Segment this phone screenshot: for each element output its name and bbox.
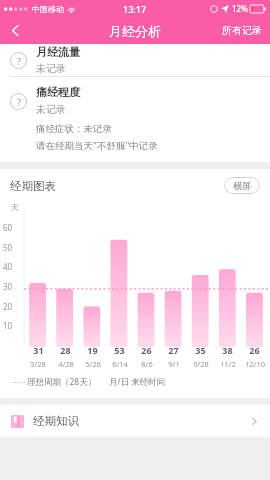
staticText: 所有记录 xyxy=(222,24,262,37)
staticText: 27 xyxy=(168,344,179,356)
staticText: 4/28 xyxy=(58,359,74,369)
staticText: 12/10 xyxy=(245,359,265,369)
staticText: 未记录 xyxy=(36,103,66,116)
staticText: 38 xyxy=(222,344,233,356)
staticText: 5/26 xyxy=(85,359,101,369)
staticText: 26 xyxy=(141,344,152,356)
staticText: 月经分析 xyxy=(109,23,161,39)
button[interactable]: ? xyxy=(0,44,270,76)
staticText: 19 xyxy=(87,344,98,356)
staticText: 30 xyxy=(3,281,13,292)
staticText: 50 xyxy=(3,242,13,253)
staticText: 60 xyxy=(3,222,13,233)
staticText: 40 xyxy=(3,261,13,272)
staticText: 横屏 xyxy=(233,180,251,191)
staticText: 痛经程度 xyxy=(36,85,80,99)
staticText: 28 xyxy=(60,344,71,356)
staticText: 经期图表 xyxy=(10,179,56,193)
staticText: 26 xyxy=(249,344,260,356)
staticText: 8/6 xyxy=(141,359,153,369)
staticText: 未记录 xyxy=(36,62,66,75)
staticText: 经期知识 xyxy=(33,414,79,428)
staticText: 53 xyxy=(114,344,125,356)
staticText: 20 xyxy=(3,301,13,312)
staticText: 35 xyxy=(195,344,206,356)
staticText: 31 xyxy=(33,344,44,356)
staticText: 11/2 xyxy=(220,359,236,369)
staticText: 13:17 xyxy=(123,3,147,15)
staticText: 9/1 xyxy=(168,359,180,369)
staticText: 天 xyxy=(11,202,19,212)
staticText: 10 xyxy=(3,320,13,331)
button[interactable]: Back xyxy=(0,17,30,44)
staticText: ? xyxy=(17,55,21,67)
staticText: 请在经期当天"不舒服"中记录 xyxy=(36,139,158,152)
staticText: 月经流量 xyxy=(36,45,80,59)
staticText: 痛经症状：未记录 xyxy=(36,123,112,135)
staticText: 3/28 xyxy=(30,359,46,369)
button[interactable]: ? xyxy=(0,77,270,162)
staticText: 9/28 xyxy=(193,359,209,369)
staticText: ? xyxy=(17,96,21,108)
staticText: 中国移动 xyxy=(32,4,64,14)
button[interactable]: 所有记录 xyxy=(214,20,270,41)
button[interactable]: 经期知识 xyxy=(0,405,270,437)
staticText: 12% xyxy=(232,3,248,14)
staticText: 月/日 来经时间 xyxy=(109,376,166,388)
button[interactable]: 横屏 xyxy=(224,177,260,194)
staticText: 理想周期（28天） xyxy=(27,376,97,388)
staticText: 6/14 xyxy=(112,359,128,369)
